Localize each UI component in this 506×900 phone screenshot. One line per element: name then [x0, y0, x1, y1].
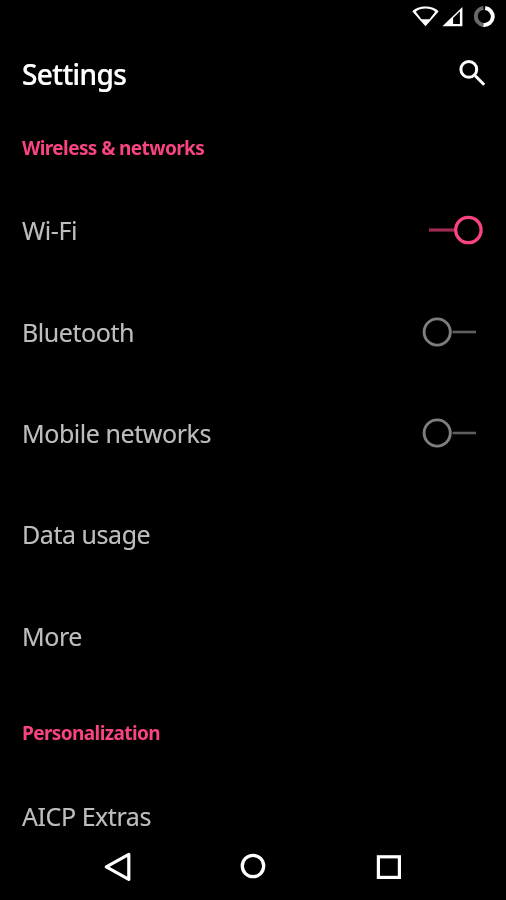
staticText: Mobile networks	[22, 416, 211, 450]
button[interactable]: Wi-Fi	[0, 180, 506, 280]
button[interactable]: Search	[446, 48, 490, 92]
staticText: Settings	[22, 55, 127, 93]
staticText: Bluetooth	[22, 315, 134, 349]
button[interactable]: Home	[223, 837, 283, 897]
staticText: Wireless & networks	[22, 135, 205, 161]
staticText: More	[22, 619, 82, 653]
staticText: AICP Extras	[22, 799, 151, 833]
button[interactable]: Bluetooth	[0, 282, 506, 382]
button[interactable]: Mobile networks	[0, 383, 506, 483]
staticText: Data usage	[22, 517, 151, 551]
staticText: Wi-Fi	[22, 213, 77, 247]
button[interactable]: Back	[88, 837, 148, 897]
button[interactable]: More	[0, 586, 506, 686]
staticText: Personalization	[22, 720, 161, 746]
button[interactable]: AICP Extras	[0, 766, 506, 866]
button[interactable]: Recent apps	[358, 837, 418, 897]
button[interactable]: Data usage	[0, 484, 506, 584]
